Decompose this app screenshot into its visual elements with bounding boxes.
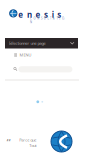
button[interactable]: MENU [14, 51, 72, 59]
button[interactable]: Search [14, 67, 17, 71]
staticText: Tout [29, 143, 36, 148]
staticText: MENU [19, 52, 31, 58]
staticText: enesis [18, 9, 61, 20]
staticText: Sélectionner une page [8, 41, 45, 46]
button[interactable]: Sélectionner une page [5, 38, 78, 48]
staticText: CONSULTATION [30, 17, 68, 20]
button[interactable]: Genesis Consultation home [10, 9, 70, 22]
staticText: “ [7, 135, 11, 148]
staticText: Parce que [19, 137, 36, 142]
